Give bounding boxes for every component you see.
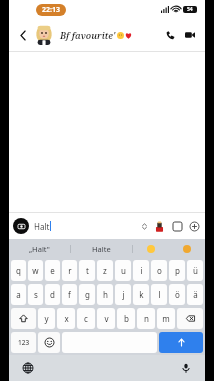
button[interactable]: g bbox=[79, 284, 95, 305]
button[interactable]: s bbox=[28, 284, 43, 305]
button[interactable]: Halt bbox=[34, 217, 148, 235]
staticText: u bbox=[121, 265, 126, 276]
staticText: m bbox=[162, 313, 170, 324]
button[interactable]: Call bbox=[160, 25, 180, 45]
button[interactable]: ö bbox=[169, 284, 185, 305]
staticText: ü bbox=[193, 265, 198, 276]
staticText: h bbox=[103, 289, 108, 300]
staticText: n bbox=[144, 313, 149, 324]
button[interactable]: i bbox=[133, 260, 149, 281]
button[interactable]: x bbox=[57, 308, 75, 329]
button[interactable]: e bbox=[45, 260, 60, 281]
button[interactable] bbox=[169, 239, 205, 258]
button[interactable]: z bbox=[97, 260, 113, 281]
button[interactable]: Enter bbox=[159, 332, 203, 353]
staticText: e bbox=[50, 265, 55, 276]
button[interactable]: a bbox=[11, 284, 26, 305]
button[interactable]: f bbox=[62, 284, 77, 305]
staticText: z bbox=[103, 265, 107, 276]
button[interactable]: b bbox=[117, 308, 135, 329]
button[interactable]: k bbox=[133, 284, 149, 305]
button[interactable]: „Halt" bbox=[9, 239, 70, 258]
button[interactable]: c bbox=[77, 308, 95, 329]
staticText: t bbox=[86, 265, 89, 276]
button[interactable]: n bbox=[137, 308, 155, 329]
button[interactable]: l bbox=[151, 284, 167, 305]
button[interactable]: Camera bbox=[13, 218, 29, 234]
staticText: f bbox=[68, 289, 71, 300]
staticText: y bbox=[44, 313, 49, 324]
staticText: j bbox=[122, 289, 125, 300]
button[interactable]: Stickers bbox=[152, 219, 167, 234]
staticText: q bbox=[16, 265, 21, 276]
button[interactable]: o bbox=[151, 260, 167, 281]
staticText: o bbox=[157, 265, 162, 276]
button[interactable]: ä bbox=[187, 284, 203, 305]
button[interactable]: u bbox=[115, 260, 131, 281]
button[interactable]: 123 bbox=[11, 332, 36, 353]
staticText: p bbox=[175, 265, 180, 276]
staticText: Bf favourite' bbox=[60, 29, 116, 41]
button[interactable]: Backspace bbox=[177, 308, 203, 329]
staticText: 123 bbox=[18, 338, 30, 347]
button[interactable]: Bf favourite' bbox=[60, 29, 160, 41]
staticText: „Halt" bbox=[29, 244, 50, 254]
button[interactable]: Add bbox=[187, 219, 201, 233]
staticText: x bbox=[64, 313, 69, 324]
staticText: Halte bbox=[92, 244, 111, 254]
button[interactable]: Emoji bbox=[38, 332, 60, 353]
button[interactable]: Change language bbox=[23, 355, 107, 381]
button[interactable]: w bbox=[28, 260, 43, 281]
staticText: v bbox=[104, 313, 109, 324]
button[interactable]: v bbox=[97, 308, 115, 329]
button[interactable]: p bbox=[169, 260, 185, 281]
staticText: ö bbox=[175, 289, 180, 300]
staticText: w bbox=[32, 265, 39, 276]
button[interactable]: Video call bbox=[180, 25, 200, 45]
staticText: k bbox=[139, 289, 144, 300]
button[interactable]: GIF bbox=[170, 219, 184, 233]
staticText: a bbox=[16, 289, 21, 300]
staticText: b bbox=[124, 313, 129, 324]
button[interactable]: t bbox=[79, 260, 95, 281]
staticText: ä bbox=[193, 289, 198, 300]
staticText: 54 bbox=[187, 6, 193, 13]
button[interactable]: m bbox=[157, 308, 175, 329]
staticText: c bbox=[84, 313, 88, 324]
staticText: Halt bbox=[34, 221, 50, 232]
button[interactable]: q bbox=[11, 260, 26, 281]
staticText: s bbox=[34, 289, 38, 300]
button[interactable] bbox=[133, 239, 169, 258]
staticText: l bbox=[158, 289, 161, 300]
staticText: d bbox=[50, 289, 55, 300]
button[interactable]: Voice input bbox=[107, 355, 191, 381]
button[interactable]: Back bbox=[14, 26, 32, 44]
button[interactable]: Shift bbox=[11, 308, 36, 329]
button[interactable]: h bbox=[97, 284, 113, 305]
staticText: 22:13 bbox=[42, 5, 60, 15]
button[interactable]: ü bbox=[187, 260, 203, 281]
button[interactable]: r bbox=[62, 260, 77, 281]
button[interactable]: d bbox=[45, 284, 60, 305]
staticText: g bbox=[85, 289, 90, 300]
staticText: r bbox=[68, 265, 72, 276]
button[interactable]: Halte bbox=[71, 239, 132, 258]
button[interactable]: y bbox=[38, 308, 55, 329]
button[interactable]: j bbox=[115, 284, 131, 305]
staticText: i bbox=[140, 265, 143, 276]
